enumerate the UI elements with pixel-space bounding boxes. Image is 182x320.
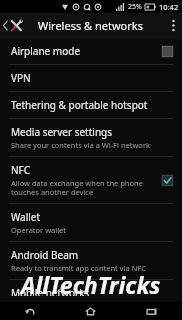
- staticText: 25%: [128, 2, 142, 12]
- button[interactable]: NFC: [0, 157, 182, 203]
- button[interactable]: Enabled: [161, 174, 174, 187]
- staticText: AllTechTricks: [21, 269, 161, 300]
- button[interactable]: Back: [0, 302, 60, 320]
- staticText: 10:42: [159, 2, 179, 12]
- button[interactable]: Wallet: [0, 204, 182, 241]
- staticText: Wireless & networks: [38, 18, 143, 33]
- button[interactable]: Airplane mode: [0, 38, 182, 64]
- staticText: Mobile networks: [11, 286, 90, 296]
- button[interactable]: Up, Settings: [0, 16, 27, 35]
- staticText: Ready to transmit app content via NFC: [11, 263, 146, 273]
- staticText: NFC: [11, 163, 31, 177]
- button[interactable]: More options: [165, 15, 182, 36]
- button[interactable]: Media server settings: [0, 119, 182, 156]
- staticText: Share your contents via a Wi-Fi network: [11, 140, 150, 150]
- button[interactable]: Recent apps: [121, 302, 182, 320]
- staticText: Airplane mode: [11, 44, 81, 58]
- staticText: VPN: [11, 71, 31, 85]
- staticText: Operator wallet: [11, 225, 67, 235]
- staticText: Wallet: [11, 210, 41, 224]
- button[interactable]: Disabled: [161, 45, 174, 58]
- button[interactable]: Home: [60, 302, 121, 320]
- staticText: Tethering & portable hotspot: [11, 98, 148, 112]
- button[interactable]: VPN: [0, 65, 182, 91]
- button[interactable]: Android Beam: [0, 242, 182, 279]
- staticText: Android Beam: [11, 248, 79, 262]
- button[interactable]: Mobile networks: [0, 280, 182, 302]
- staticText: Media server settings: [11, 125, 113, 139]
- staticText: Allow data exchange when the phone touch…: [11, 178, 155, 197]
- button[interactable]: Tethering & portable hotspot: [0, 92, 182, 118]
